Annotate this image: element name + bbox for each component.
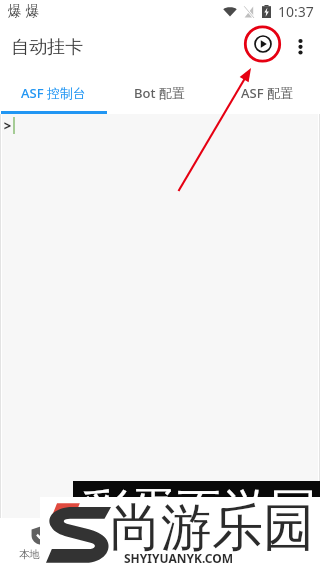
staticText: 10:37 (278, 2, 314, 21)
staticText: 社区 (190, 548, 211, 561)
staticText: 爆 爆 (8, 1, 40, 20)
button[interactable]: 社区 (160, 518, 240, 568)
staticText: ASF 控制台 (21, 84, 86, 102)
staticText: 彩蛋不游园 (82, 482, 317, 506)
button[interactable]: Bot 配置 (106, 72, 213, 114)
staticText: 自动挂卡 (11, 36, 83, 59)
staticText: > (3, 115, 13, 135)
staticText: SHYIYUANYK.COM (124, 550, 234, 566)
staticText: 游戏库 (104, 548, 136, 561)
button[interactable]: ASF 配置 (213, 72, 320, 114)
button[interactable]: More options (291, 36, 310, 57)
button[interactable]: 本地游戏 (0, 518, 80, 568)
staticText: 本地游戏 (19, 548, 61, 561)
button[interactable]: 我的 (240, 518, 320, 568)
staticText: 我的 (270, 548, 291, 561)
staticText: ASF 配置 (241, 84, 293, 102)
staticText: Bot 配置 (134, 84, 185, 102)
button[interactable]: Start (247, 28, 279, 60)
button[interactable]: 游戏库 (80, 518, 160, 568)
button[interactable]: ASF 控制台 (0, 72, 106, 114)
staticText: 尚游乐园 (110, 496, 314, 560)
